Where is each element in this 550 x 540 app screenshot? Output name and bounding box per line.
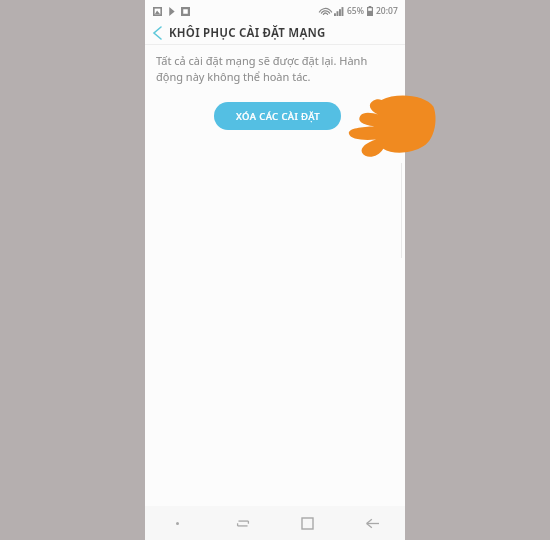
staticText: XÓA CÁC CÀI ĐẶT <box>236 110 320 123</box>
staticText: KHÔI PHỤC CÀI ĐẶT MẠNG <box>169 25 326 41</box>
staticText: 20:07 <box>376 5 398 17</box>
button[interactable]: Recents <box>210 506 275 540</box>
staticText: Tất cả cài đặt mạng sẽ được đặt lại. Hàn… <box>156 53 389 85</box>
button[interactable]: Back <box>145 22 169 44</box>
button[interactable]: XÓA CÁC CÀI ĐẶT <box>214 102 341 130</box>
staticText: 65% <box>347 5 364 17</box>
button[interactable]: Menu <box>145 506 210 540</box>
button[interactable]: Back <box>340 506 405 540</box>
button[interactable]: Home <box>275 506 340 540</box>
